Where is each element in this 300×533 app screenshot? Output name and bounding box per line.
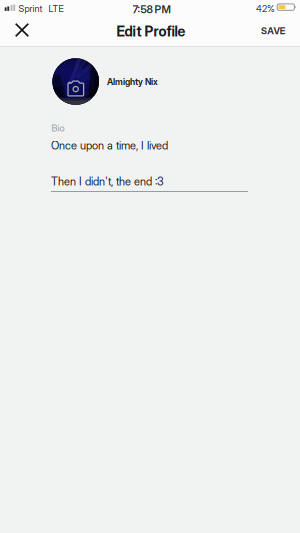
staticText: Then I didn't, the end :3 — [51, 175, 164, 188]
staticText: Once upon a time, I lived — [51, 139, 168, 152]
button[interactable]: Close — [7, 16, 37, 44]
staticText: SAVE — [261, 25, 286, 36]
staticText: LTE — [49, 3, 64, 14]
staticText: Bio — [51, 122, 64, 134]
staticText: 42% — [256, 3, 275, 14]
staticText: Edit Profile — [116, 23, 185, 40]
button[interactable]: SAVE — [230, 18, 300, 44]
staticText: Almighty Nix — [107, 76, 158, 87]
staticText: Sprint — [19, 3, 43, 14]
button[interactable]: Almighty Nix — [0, 0, 300, 112]
staticText: 7:58 PM — [132, 3, 170, 16]
